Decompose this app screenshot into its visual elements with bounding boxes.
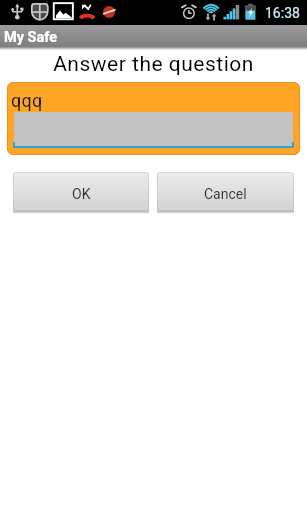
staticText: My Safe <box>4 29 58 46</box>
button[interactable]: Cancel <box>157 172 294 214</box>
staticText: Answer the question <box>0 52 307 77</box>
staticText: Cancel <box>204 186 247 202</box>
button[interactable]: OK <box>13 172 149 214</box>
button[interactable]: Answer input field <box>13 110 294 150</box>
staticText: OK <box>72 186 91 202</box>
staticText: qqq <box>11 90 43 111</box>
staticText: 16:38 <box>265 5 300 21</box>
